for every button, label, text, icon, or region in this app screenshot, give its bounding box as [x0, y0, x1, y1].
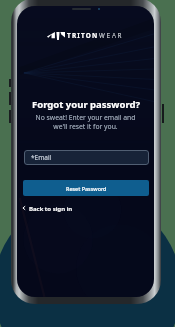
staticText: *Email	[31, 153, 52, 162]
button[interactable]: Reset Password	[23, 180, 149, 196]
staticText: Forgot your password?	[32, 98, 140, 111]
staticText: Reset Password	[66, 185, 107, 192]
staticText: TRITON	[67, 31, 99, 40]
button[interactable]: Back to sign in	[21, 201, 73, 215]
button[interactable]: *Email	[24, 150, 149, 165]
staticText: Back to sign in	[29, 204, 73, 212]
staticText: No sweat! Enter your email and we'll res…	[35, 113, 136, 131]
staticText: WEAR	[99, 31, 124, 40]
